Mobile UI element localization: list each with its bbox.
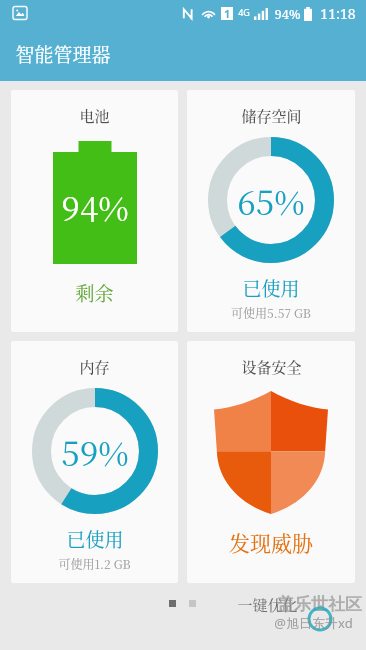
staticText: 1 bbox=[224, 7, 230, 20]
button[interactable]: 一键优化 bbox=[237, 594, 298, 616]
staticText: 设备安全 bbox=[241, 356, 302, 378]
staticText: 可使用1.2 GB bbox=[58, 555, 131, 572]
staticText: 94% bbox=[274, 5, 301, 23]
button[interactable]: Battery bbox=[11, 90, 178, 332]
staticText: 11:18 bbox=[320, 4, 356, 23]
staticText: 内存 bbox=[79, 356, 110, 378]
staticText: 一键优化 bbox=[237, 594, 298, 616]
staticText: 65% bbox=[237, 177, 305, 224]
staticText: 智能管理器 bbox=[15, 40, 111, 67]
staticText: 4G bbox=[238, 6, 250, 18]
staticText: 剩余 bbox=[75, 279, 114, 306]
staticText: 发现威胁 bbox=[229, 527, 313, 557]
staticText: 59% bbox=[61, 428, 129, 475]
button[interactable]: Memory bbox=[11, 341, 178, 583]
staticText: 94% bbox=[61, 183, 129, 230]
staticText: 可使用5.57 GB bbox=[231, 304, 311, 321]
staticText: 储存空间 bbox=[241, 105, 302, 127]
staticText: 盖乐世社区 bbox=[277, 594, 362, 615]
staticText: 已使用 bbox=[242, 274, 300, 301]
staticText: @旭日东升xd bbox=[274, 614, 353, 632]
button[interactable]: Storage bbox=[187, 90, 355, 332]
button[interactable]: Device security bbox=[187, 341, 355, 583]
staticText: 电池 bbox=[79, 105, 110, 127]
staticText: 已使用 bbox=[66, 525, 124, 552]
